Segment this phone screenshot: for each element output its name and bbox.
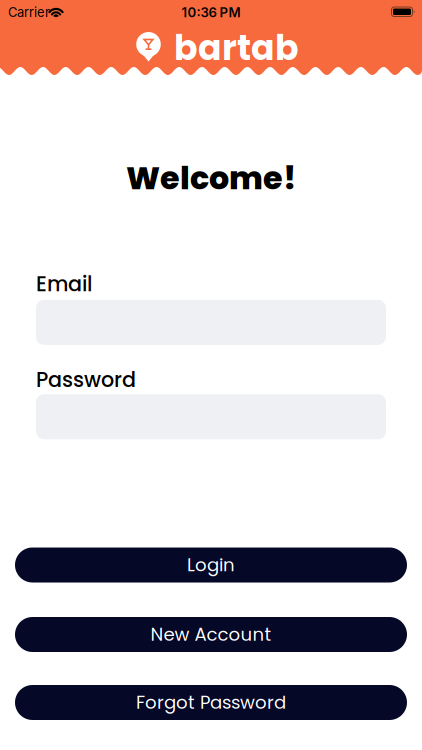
button[interactable]: New Account bbox=[15, 617, 407, 652]
staticText: New Account bbox=[150, 622, 271, 647]
staticText: Email bbox=[36, 269, 92, 298]
button[interactable]: Forgot Password bbox=[15, 685, 407, 720]
staticText: bartab bbox=[174, 23, 299, 72]
staticText: Password bbox=[36, 365, 136, 394]
staticText: Forgot Password bbox=[136, 690, 286, 715]
staticText: Carrier bbox=[8, 4, 50, 20]
staticText: Login bbox=[187, 552, 235, 578]
staticText: 10:36 PM bbox=[181, 4, 240, 20]
button[interactable]: Login bbox=[15, 547, 407, 582]
staticText: Welcome! bbox=[126, 156, 296, 200]
